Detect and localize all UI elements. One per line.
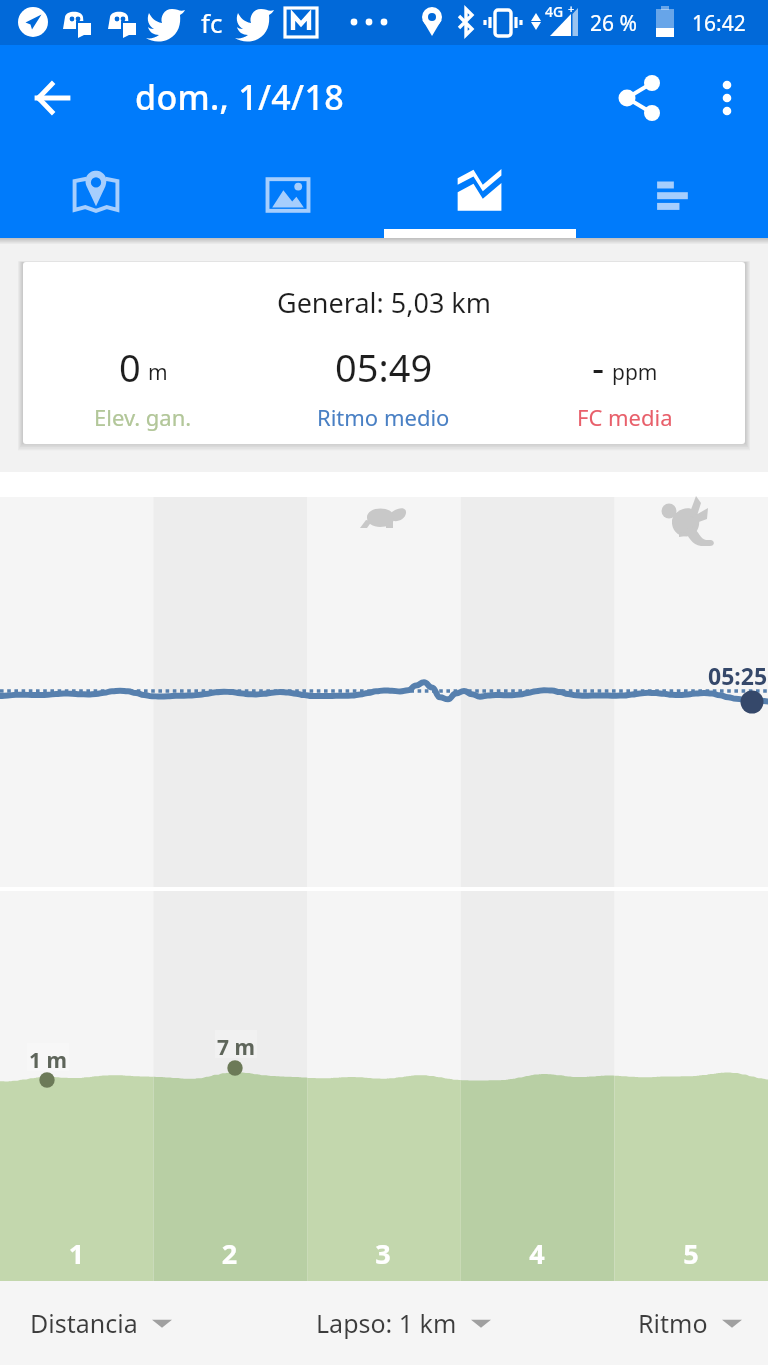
staticText: Ritmo — [638, 1306, 708, 1340]
staticText: m — [148, 358, 168, 387]
staticText: 05:49 — [335, 341, 433, 393]
button[interactable]: More options — [695, 66, 759, 130]
button[interactable]: Splits — [576, 150, 768, 238]
staticText: 1 m — [29, 1046, 67, 1075]
staticText: 4G — [545, 2, 564, 21]
staticText: dom., 1/4/18 — [135, 74, 344, 120]
button[interactable]: Ritmo — [638, 1306, 768, 1340]
staticText: 2 — [153, 1235, 306, 1272]
button[interactable]: General: 5,03 km — [23, 262, 745, 444]
staticText: FC media — [577, 402, 673, 432]
button[interactable]: Back — [20, 66, 84, 130]
staticText: 16:42 — [692, 9, 746, 38]
button[interactable]: Distancia — [0, 1306, 172, 1340]
staticText: 7 m — [217, 1033, 255, 1062]
button[interactable]: Photos — [192, 150, 384, 238]
staticText: - — [592, 341, 605, 393]
staticText: Distancia — [30, 1306, 138, 1340]
staticText: General: 5,03 km — [23, 284, 745, 321]
staticText: ppm — [612, 358, 658, 387]
staticText: Lapso: 1 km — [316, 1306, 457, 1340]
button[interactable]: Graphs — [384, 150, 576, 238]
staticText: 4 — [460, 1235, 614, 1272]
staticText: 0 — [119, 341, 141, 393]
staticText: 3 — [306, 1235, 460, 1272]
button[interactable]: Share — [609, 66, 673, 130]
staticText: + — [568, 1, 575, 16]
staticText: Ritmo medio — [317, 402, 450, 432]
staticText: 5 — [614, 1235, 768, 1272]
staticText: fc — [201, 5, 223, 40]
button[interactable]: Map — [0, 150, 192, 238]
staticText: 05:25 — [708, 660, 768, 691]
staticText: 26 % — [590, 9, 637, 38]
staticText: 1 — [0, 1235, 153, 1272]
button[interactable]: Lapso: 1 km — [316, 1306, 491, 1340]
staticText: Elev. gan. — [94, 402, 192, 432]
